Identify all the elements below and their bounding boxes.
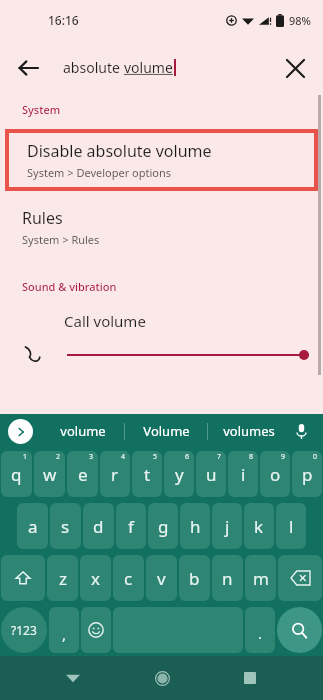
button[interactable]: 8 — [228, 451, 258, 497]
staticText: q — [11, 463, 22, 486]
staticText: volume — [60, 422, 106, 440]
staticText: Volume — [143, 422, 190, 440]
staticText: w — [43, 463, 57, 486]
staticText: z — [59, 567, 67, 590]
staticText: 8 — [249, 452, 254, 462]
button[interactable]: More suggestions — [8, 419, 33, 444]
staticText: 4 — [121, 452, 126, 462]
button[interactable]: Rules — [0, 205, 323, 253]
button[interactable]: g — [148, 503, 178, 549]
staticText: volumes — [223, 422, 275, 440]
staticText: System > Rules — [22, 232, 100, 247]
staticText: , — [62, 624, 67, 644]
button[interactable]: Emoji — [81, 607, 111, 653]
button[interactable]: 0 — [292, 451, 322, 497]
button[interactable]: z — [47, 555, 78, 601]
button[interactable]: a — [17, 503, 48, 549]
staticText: c — [124, 567, 133, 590]
button[interactable]: c — [113, 555, 144, 601]
staticText: p — [302, 463, 313, 486]
button[interactable]: d — [83, 503, 114, 549]
staticText: a — [28, 515, 38, 538]
staticText: e — [78, 463, 88, 486]
button[interactable]: ?123 — [1, 607, 47, 653]
button[interactable]: h — [180, 503, 210, 549]
button[interactable]: m — [245, 555, 276, 601]
button[interactable]: Search — [277, 607, 322, 653]
button[interactable]: Voice input — [287, 417, 315, 445]
staticText: 7 — [217, 452, 222, 462]
staticText: 9 — [281, 452, 286, 462]
button[interactable]: 7 — [196, 451, 226, 497]
button[interactable]: 1 — [1, 451, 32, 497]
staticText: Call volume — [64, 311, 146, 331]
staticText: r — [111, 463, 119, 486]
staticText: g — [158, 515, 169, 538]
button[interactable]: n — [212, 555, 243, 601]
button[interactable]: Home — [145, 661, 179, 695]
button[interactable]: f — [116, 503, 146, 549]
staticText: 16:16 — [48, 12, 79, 28]
staticText: l — [289, 515, 294, 538]
staticText: d — [93, 515, 104, 538]
staticText: i — [241, 463, 246, 486]
staticText: u — [206, 463, 217, 486]
button[interactable]: 6 — [164, 451, 194, 497]
button[interactable]: x — [80, 555, 111, 601]
button[interactable]: 5 — [132, 451, 162, 497]
staticText: System — [22, 102, 61, 117]
staticText: ?123 — [11, 622, 37, 638]
staticText: x — [91, 567, 100, 590]
button[interactable]: Disable absolute volume — [9, 133, 314, 187]
staticText: o — [270, 463, 281, 486]
button[interactable]: Clear search — [275, 48, 315, 88]
staticText: s — [61, 515, 70, 538]
staticText: Disable absolute volume — [27, 140, 212, 162]
button[interactable]: Shift — [1, 555, 45, 601]
staticText: 3 — [89, 452, 94, 462]
staticText: 0 — [313, 452, 318, 462]
button[interactable]: b — [179, 555, 210, 601]
staticText: System > Developer options — [27, 165, 172, 180]
button[interactable]: Volume — [125, 414, 207, 448]
staticText: Rules — [22, 207, 63, 229]
button[interactable]: Recent apps — [233, 661, 267, 695]
button[interactable]: 4 — [100, 451, 130, 497]
staticText: y — [175, 463, 184, 486]
staticText: Sound & vibration — [22, 279, 117, 294]
staticText: m — [253, 567, 269, 590]
button[interactable]: Back — [56, 661, 90, 695]
staticText: v — [157, 567, 166, 590]
button[interactable]: 9 — [260, 451, 290, 497]
staticText: f — [128, 515, 134, 538]
button[interactable]: Backspace — [278, 555, 322, 601]
button[interactable]: v — [146, 555, 177, 601]
staticText: . — [258, 623, 263, 643]
button[interactable]: l — [276, 503, 306, 549]
staticText: volume — [124, 58, 173, 77]
staticText: 2 — [56, 452, 61, 462]
staticText: 98% — [289, 13, 311, 28]
button[interactable]: j — [212, 503, 242, 549]
staticText: n — [222, 567, 233, 590]
button[interactable]: volumes — [208, 414, 290, 448]
staticText: t — [144, 463, 151, 486]
button[interactable]: 2 — [34, 451, 65, 497]
staticText: b — [189, 567, 200, 590]
button[interactable]: . — [245, 607, 275, 653]
button[interactable]: , — [49, 607, 79, 653]
staticText: 6 — [185, 452, 190, 462]
button[interactable]: Back — [8, 48, 48, 88]
staticText: 5 — [153, 452, 158, 462]
button[interactable]: k — [244, 503, 274, 549]
staticText: k — [254, 515, 264, 538]
staticText: h — [190, 515, 201, 538]
staticText: absolute — [63, 58, 124, 77]
staticText: j — [225, 515, 230, 538]
button[interactable]: volume — [42, 414, 124, 448]
button[interactable]: s — [50, 503, 81, 549]
button[interactable]: 3 — [67, 451, 98, 497]
staticText: 1 — [23, 452, 28, 462]
